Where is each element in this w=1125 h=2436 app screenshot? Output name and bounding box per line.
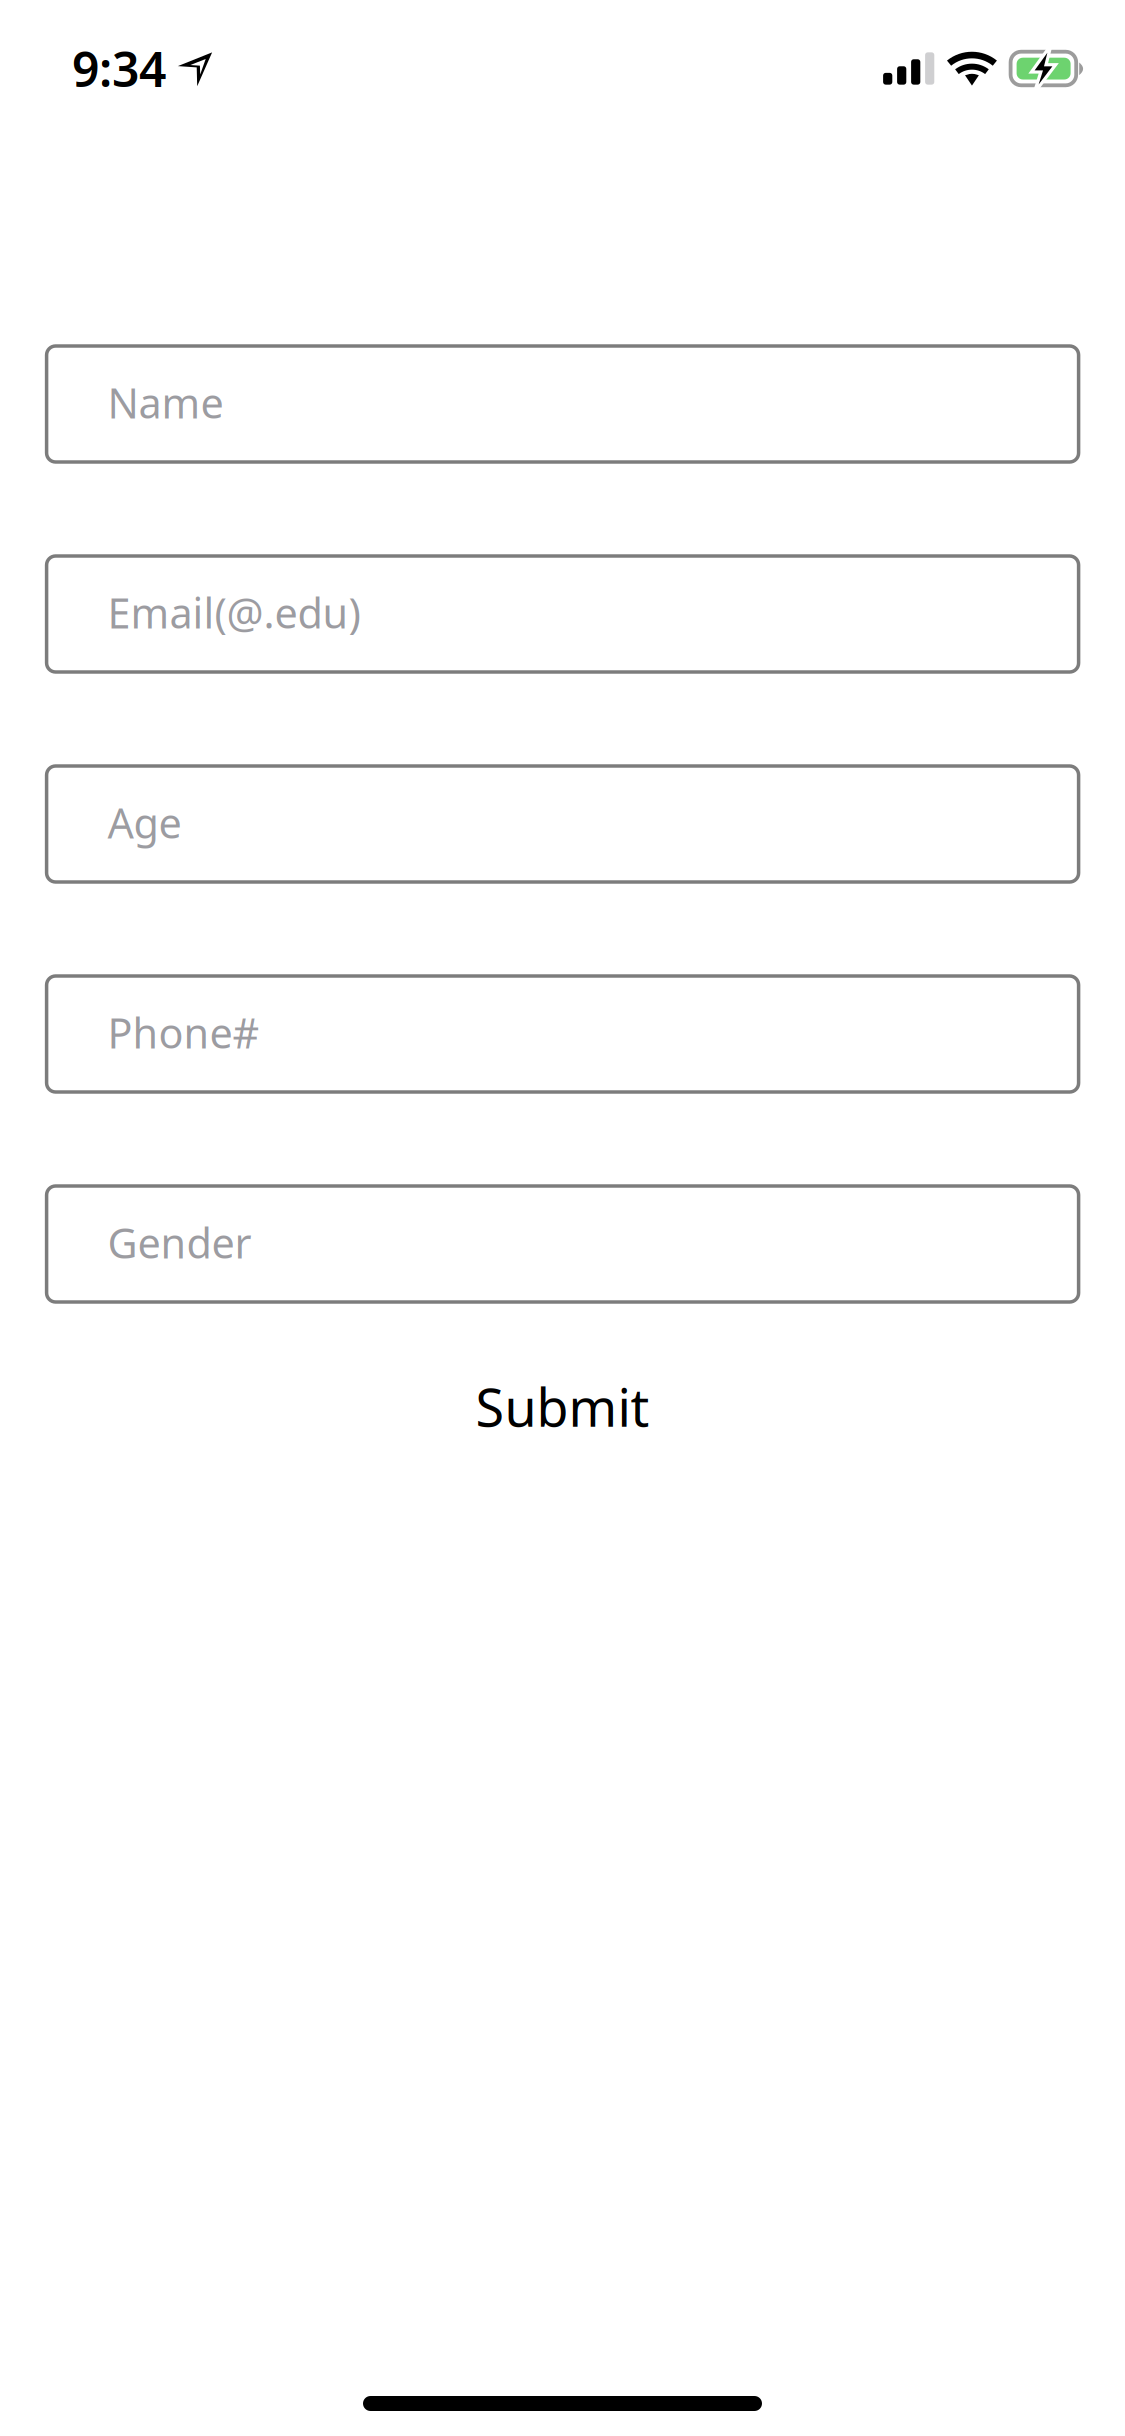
staticText: Age [108,795,182,850]
staticText: Email(@.edu) [108,585,361,640]
button[interactable]: Phone# [47,976,1079,1092]
button[interactable]: Submit [435,1342,689,1471]
staticText: Name [108,375,224,430]
button[interactable]: Age [47,766,1079,882]
staticText: Gender [108,1215,252,1270]
staticText: 9:34 [72,37,166,100]
staticText: Submit [475,1372,649,1441]
button[interactable]: Gender [47,1186,1079,1302]
button[interactable]: Name [47,346,1079,462]
button[interactable]: Email(@.edu) [47,556,1079,672]
staticText: Phone# [108,1005,260,1060]
